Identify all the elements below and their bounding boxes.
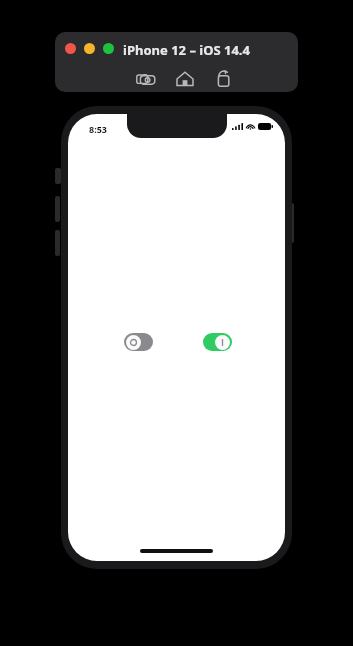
staticText: iPhone 12 – iOS 14.4 xyxy=(123,41,250,59)
button[interactable]: Maximize xyxy=(103,43,114,54)
staticText: 8:53 xyxy=(89,123,107,135)
button[interactable]: Close xyxy=(65,43,76,54)
button[interactable]: Minimize xyxy=(84,43,95,54)
button[interactable]: Screenshot xyxy=(131,64,161,92)
button[interactable]: On xyxy=(203,333,232,351)
button[interactable]: Rotate xyxy=(209,64,239,92)
button[interactable]: Off xyxy=(124,333,153,351)
button[interactable]: Home xyxy=(170,64,200,92)
